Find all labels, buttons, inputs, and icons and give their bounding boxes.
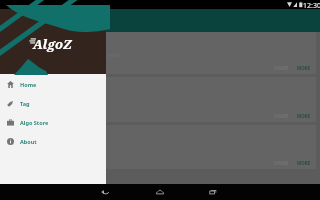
button[interactable]: Home <box>0 75 106 94</box>
button[interactable]: Tag <box>0 94 106 113</box>
button[interactable]: SHARE <box>270 112 293 120</box>
staticText: Tag <box>20 100 30 107</box>
staticText: About <box>20 138 37 145</box>
staticText: AlgoZ <box>33 35 72 53</box>
button[interactable]: MORE <box>293 159 315 167</box>
button[interactable]: Back <box>92 184 118 200</box>
button[interactable]: MORE <box>293 112 315 120</box>
staticText: 12:30 <box>303 1 320 10</box>
button[interactable]: About <box>0 132 106 151</box>
button[interactable]: Home <box>147 184 173 200</box>
button[interactable]: SHARE <box>270 64 293 72</box>
staticText: Lorem ipsum dolor sit amet, consectetur … <box>11 52 122 59</box>
staticText: Lorem ipsum <box>11 100 42 107</box>
staticText: Algo Store <box>20 119 49 126</box>
button[interactable]: SHARE <box>270 159 293 167</box>
button[interactable]: Algo Store <box>0 113 106 132</box>
button[interactable]: Recent apps <box>200 184 226 200</box>
button[interactable]: MORE <box>293 64 315 72</box>
staticText: Home <box>20 81 37 88</box>
